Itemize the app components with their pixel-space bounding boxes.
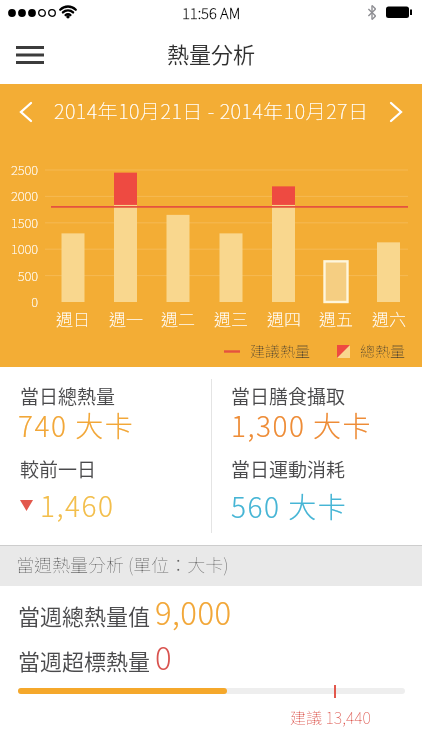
staticText: 1,460	[40, 485, 115, 526]
staticText: 0	[31, 292, 38, 311]
staticText: 500	[17, 266, 38, 285]
staticText: 熱量分析	[167, 37, 256, 69]
staticText: 2014年10月21日 - 2014年10月27日	[54, 96, 369, 125]
staticText: 560 大卡	[231, 486, 348, 527]
staticText: 1000	[10, 239, 38, 258]
staticText: 建議 13,440	[290, 705, 371, 728]
staticText: 週二	[161, 306, 195, 331]
staticText: 週五	[319, 306, 353, 331]
staticText: 1500	[10, 213, 38, 232]
staticText: 週一	[109, 306, 143, 331]
staticText: 當週超標熱量	[18, 644, 155, 676]
button[interactable]: 當日總熱量	[0, 367, 210, 545]
staticText: 週四	[267, 306, 301, 331]
staticText: 總熱量	[360, 340, 406, 362]
staticText: 較前一日	[20, 455, 97, 483]
staticText: 740 大卡	[18, 405, 135, 446]
staticText: 1,300 大卡	[231, 405, 373, 446]
button[interactable]	[8, 33, 52, 77]
staticText: 建議熱量	[250, 340, 311, 362]
staticText: 當日總熱量	[20, 382, 116, 410]
staticText: 週日	[56, 306, 90, 331]
staticText: 2500	[10, 160, 38, 179]
button[interactable]: 當日膳食攝取	[212, 367, 422, 545]
staticText: 週三	[214, 306, 248, 331]
button[interactable]	[378, 94, 414, 130]
staticText: 9,000	[155, 589, 232, 634]
staticText: 11:56 AM	[182, 2, 241, 24]
staticText: 當日膳食攝取	[231, 382, 346, 410]
staticText: 2000	[10, 186, 38, 205]
staticText: 週六	[372, 306, 406, 331]
staticText: 當週總熱量值	[18, 599, 155, 631]
staticText: 0	[155, 634, 172, 679]
staticText: 當日運動消耗	[231, 455, 346, 483]
staticText: 當週熱量分析 (單位：大卡)	[16, 551, 229, 577]
button[interactable]	[8, 94, 44, 130]
